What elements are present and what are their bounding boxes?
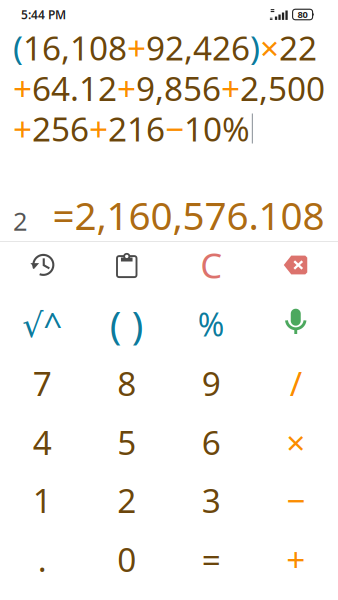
- button[interactable]: 9: [169, 354, 253, 412]
- staticText: 7: [33, 361, 52, 405]
- staticText: %: [198, 303, 225, 345]
- button[interactable]: 8: [84, 354, 169, 412]
- staticText: 3: [202, 478, 221, 522]
- button[interactable]: 7: [0, 354, 84, 412]
- staticText: 92,426: [146, 25, 250, 70]
- button[interactable]: C: [169, 236, 253, 294]
- staticText: =2,160,576.108: [52, 189, 324, 241]
- staticText: ×: [286, 420, 305, 464]
- staticText: +: [221, 66, 240, 110]
- button[interactable]: 1: [0, 471, 84, 529]
- button[interactable]: 3: [169, 471, 253, 529]
- button[interactable]: 2: [84, 471, 169, 529]
- staticText: 8: [117, 361, 136, 405]
- staticText: 80: [298, 8, 308, 21]
- staticText: 5: [117, 420, 136, 464]
- staticText: 10%: [184, 106, 250, 151]
- button[interactable]: 5: [84, 413, 169, 471]
- staticText: 4: [33, 420, 52, 464]
- staticText: (: [13, 25, 23, 70]
- button[interactable]: =: [169, 530, 253, 588]
- staticText: 256: [32, 106, 89, 151]
- button[interactable]: Paste: [84, 239, 169, 291]
- button[interactable]: 6: [169, 413, 253, 471]
- button[interactable]: ×: [253, 413, 338, 471]
- button[interactable]: History: [0, 239, 84, 291]
- staticText: +: [117, 66, 136, 110]
- staticText: 216: [108, 106, 165, 151]
- button[interactable]: .: [0, 530, 84, 588]
- staticText: +: [89, 106, 108, 151]
- button[interactable]: √^: [0, 295, 84, 353]
- staticText: 1: [33, 478, 52, 522]
- staticText: +: [13, 66, 32, 110]
- staticText: 2: [117, 478, 136, 522]
- staticText: −: [165, 106, 184, 151]
- staticText: 2,500: [240, 66, 325, 110]
- staticText: 9,856: [136, 66, 221, 110]
- staticText: ×: [260, 25, 279, 70]
- button[interactable]: −: [253, 471, 338, 529]
- button[interactable]: 0: [84, 530, 169, 588]
- button[interactable]: %: [169, 295, 253, 353]
- button[interactable]: +: [253, 530, 338, 588]
- staticText: +: [127, 25, 146, 70]
- staticText: C: [200, 242, 222, 288]
- staticText: 5:44 PM: [21, 6, 66, 22]
- staticText: ( ): [110, 298, 144, 350]
- staticText: 22: [279, 25, 317, 70]
- staticText: 64.12: [32, 66, 117, 110]
- button[interactable]: Voice input: [253, 298, 338, 350]
- staticText: +: [286, 537, 305, 581]
- staticText: 2: [13, 204, 27, 238]
- staticText: √^: [22, 302, 62, 346]
- button[interactable]: 4: [0, 413, 84, 471]
- staticText: 6: [202, 420, 221, 464]
- staticText: 9: [202, 361, 221, 405]
- staticText: −: [286, 478, 305, 522]
- button[interactable]: /: [253, 354, 338, 412]
- staticText: 16,108: [23, 25, 127, 70]
- staticText: .: [38, 537, 47, 581]
- staticText: 0: [117, 537, 136, 581]
- staticText: +: [13, 106, 32, 151]
- staticText: =: [202, 537, 221, 581]
- button[interactable]: ( ): [84, 295, 169, 353]
- staticText: ): [250, 25, 260, 70]
- button[interactable]: Backspace: [253, 239, 338, 291]
- staticText: /: [290, 361, 302, 405]
